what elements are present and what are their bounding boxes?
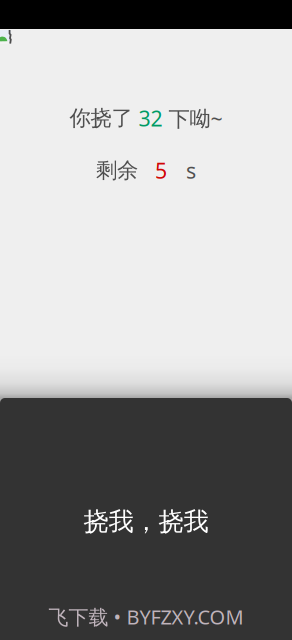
staticText: s xyxy=(186,156,196,185)
staticText: 飞下载 • BYFZXY.COM xyxy=(48,603,243,630)
staticText: 你挠了 xyxy=(69,105,138,131)
staticText: 32 xyxy=(138,104,162,132)
staticText: 挠我，挠我 xyxy=(83,506,208,537)
button[interactable]: 挠我，挠我 xyxy=(0,398,292,640)
staticText: 剩余 xyxy=(96,157,138,184)
staticText: 下呦~ xyxy=(162,104,222,132)
staticText: 5 xyxy=(155,156,167,185)
